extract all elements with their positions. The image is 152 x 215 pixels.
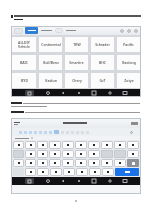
- button[interactable]: [88, 159, 100, 167]
- button[interactable]: Recents: [25, 178, 34, 184]
- button[interactable]: [54, 130, 59, 134]
- button[interactable]: [25, 150, 36, 158]
- button[interactable]: Menu: [77, 91, 81, 95]
- button[interactable]: [114, 141, 126, 149]
- button[interactable]: [89, 168, 101, 176]
- button[interactable]: Tool 1: [120, 29, 124, 33]
- button[interactable]: [25, 159, 36, 167]
- staticText: TRW: [73, 42, 81, 47]
- button[interactable]: [101, 150, 113, 158]
- button[interactable]: BAIC: [12, 55, 36, 70]
- button[interactable]: Recents: [25, 90, 34, 96]
- button[interactable]: BHC: [91, 55, 114, 70]
- button[interactable]: Screenshot: [92, 179, 96, 183]
- button[interactable]: Schrader: [91, 37, 114, 52]
- button[interactable]: [62, 159, 74, 167]
- button[interactable]: Chery: [65, 73, 88, 88]
- button[interactable]: [75, 159, 87, 167]
- staticText: BYD: [21, 78, 28, 83]
- button[interactable]: Back: [61, 179, 65, 183]
- button[interactable]: [88, 141, 100, 149]
- button[interactable]: [50, 168, 62, 176]
- button[interactable]: Bull/Benz: [39, 55, 62, 70]
- staticText: Schrader: [95, 42, 110, 47]
- button[interactable]: Continental: [39, 37, 62, 52]
- staticText: Bull/Benz: [43, 60, 59, 65]
- button[interactable]: Search: [55, 28, 63, 33]
- button[interactable]: Tool 3: [134, 29, 138, 33]
- button[interactable]: Apps: [123, 91, 127, 95]
- button[interactable]: [49, 141, 61, 149]
- button[interactable]: [13, 159, 24, 167]
- button[interactable]: Pacific: [117, 37, 140, 52]
- button[interactable]: [101, 159, 113, 167]
- staticText: BHC: [99, 60, 106, 65]
- button[interactable]: Home: [46, 91, 50, 95]
- button[interactable]: [101, 141, 113, 149]
- button[interactable]: Backspace: [127, 159, 139, 167]
- button[interactable]: [88, 150, 100, 158]
- button[interactable]: [114, 159, 126, 167]
- button[interactable]: Smartire: [65, 55, 88, 70]
- button[interactable]: [63, 168, 75, 176]
- button[interactable]: [37, 159, 48, 167]
- button[interactable]: Kaidun: [39, 73, 62, 88]
- staticText: Continental: [41, 42, 61, 47]
- button[interactable]: [25, 27, 38, 34]
- button[interactable]: [49, 159, 61, 167]
- button[interactable]: Apps: [123, 179, 127, 183]
- button[interactable]: Back: [14, 122, 20, 125]
- button[interactable]: [62, 141, 74, 149]
- button[interactable]: [127, 150, 139, 158]
- button[interactable]: Tool 2: [127, 29, 131, 33]
- button[interactable]: Settings: [130, 131, 133, 134]
- staticText: Pacific: [123, 42, 134, 47]
- button[interactable]: Shift: [13, 150, 24, 158]
- staticText: GcT: [99, 78, 106, 83]
- button[interactable]: BYD: [12, 73, 36, 88]
- button[interactable]: [76, 168, 88, 176]
- button[interactable]: Baolong: [117, 55, 140, 70]
- button[interactable]: [25, 168, 36, 176]
- button[interactable]: ALLDIY Vehicle: [12, 37, 36, 52]
- button[interactable]: TRW: [65, 37, 88, 52]
- button[interactable]: [75, 150, 87, 158]
- button[interactable]: [37, 168, 49, 176]
- staticText: BAIC: [20, 60, 28, 65]
- staticText: Chery: [72, 78, 82, 83]
- button[interactable]: [115, 168, 139, 176]
- staticText: Smartire: [69, 60, 84, 65]
- button[interactable]: [25, 141, 36, 149]
- button[interactable]: Volume: [108, 91, 112, 95]
- button[interactable]: [13, 141, 24, 149]
- button[interactable]: [127, 141, 139, 149]
- button[interactable]: Menu: [77, 179, 81, 183]
- staticText: Baolong: [122, 60, 136, 65]
- button[interactable]: [75, 141, 87, 149]
- button[interactable]: GcT: [91, 73, 114, 88]
- button[interactable]: Back: [14, 28, 23, 34]
- button[interactable]: Zotye: [117, 73, 140, 88]
- button[interactable]: [114, 150, 126, 158]
- button[interactable]: Home: [46, 179, 50, 183]
- button[interactable]: Volume: [108, 179, 112, 183]
- button[interactable]: Back: [61, 91, 65, 95]
- button[interactable]: [49, 150, 61, 158]
- button[interactable]: [62, 150, 74, 158]
- staticText: Kaidun: [45, 78, 57, 83]
- staticText: Zotye: [124, 78, 134, 83]
- button[interactable]: [102, 168, 114, 176]
- button[interactable]: [37, 150, 48, 158]
- button[interactable]: [37, 141, 48, 149]
- staticText: ALLDIY Vehicle: [18, 40, 30, 49]
- button[interactable]: Screenshot: [92, 91, 96, 95]
